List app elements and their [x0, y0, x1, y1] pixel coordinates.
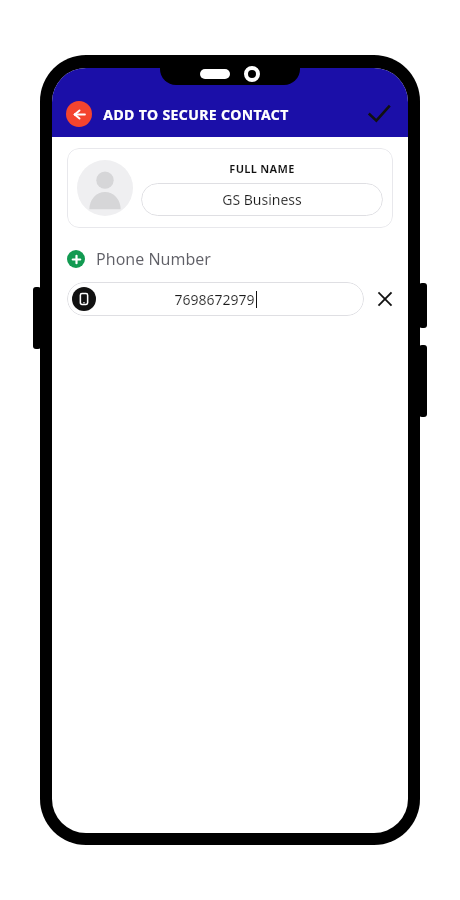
- staticText: GS Business: [222, 190, 302, 209]
- button[interactable]: Back: [66, 101, 92, 127]
- staticText: 7698672979: [174, 290, 255, 309]
- staticText: ADD TO SECURE CONTACT: [103, 105, 289, 124]
- button[interactable]: 7698672979: [67, 282, 364, 316]
- button[interactable]: GS Business: [141, 183, 383, 216]
- button[interactable]: Phone Number: [67, 248, 211, 270]
- button[interactable]: FULL NAME: [67, 148, 393, 228]
- button[interactable]: Save: [364, 99, 394, 129]
- button[interactable]: Remove phone number: [372, 286, 398, 312]
- staticText: FULL NAME: [229, 161, 295, 176]
- staticText: Phone Number: [96, 248, 211, 270]
